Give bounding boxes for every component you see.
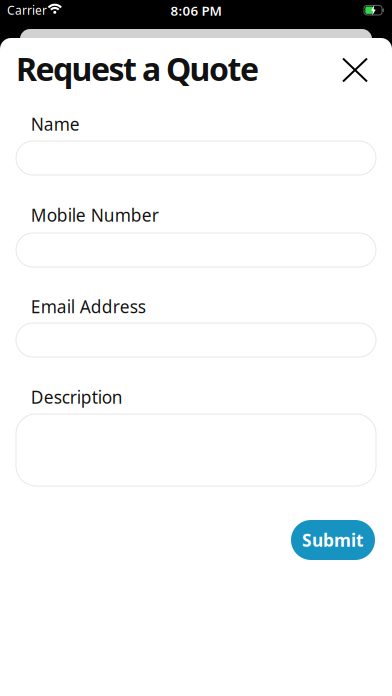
button[interactable]: Submit bbox=[291, 520, 375, 560]
button[interactable] bbox=[16, 323, 376, 357]
staticText: Carrier bbox=[7, 2, 47, 18]
button[interactable] bbox=[340, 55, 370, 85]
staticText: Email Address bbox=[31, 295, 146, 318]
button[interactable] bbox=[16, 141, 376, 175]
staticText: Request a Quote bbox=[16, 47, 259, 90]
staticText: Submit bbox=[302, 528, 364, 551]
staticText: Description bbox=[31, 385, 123, 408]
staticText: 8:06 PM bbox=[170, 2, 221, 19]
button[interactable] bbox=[16, 233, 376, 267]
staticText: Mobile Number bbox=[31, 203, 159, 226]
staticText: Name bbox=[31, 112, 80, 135]
